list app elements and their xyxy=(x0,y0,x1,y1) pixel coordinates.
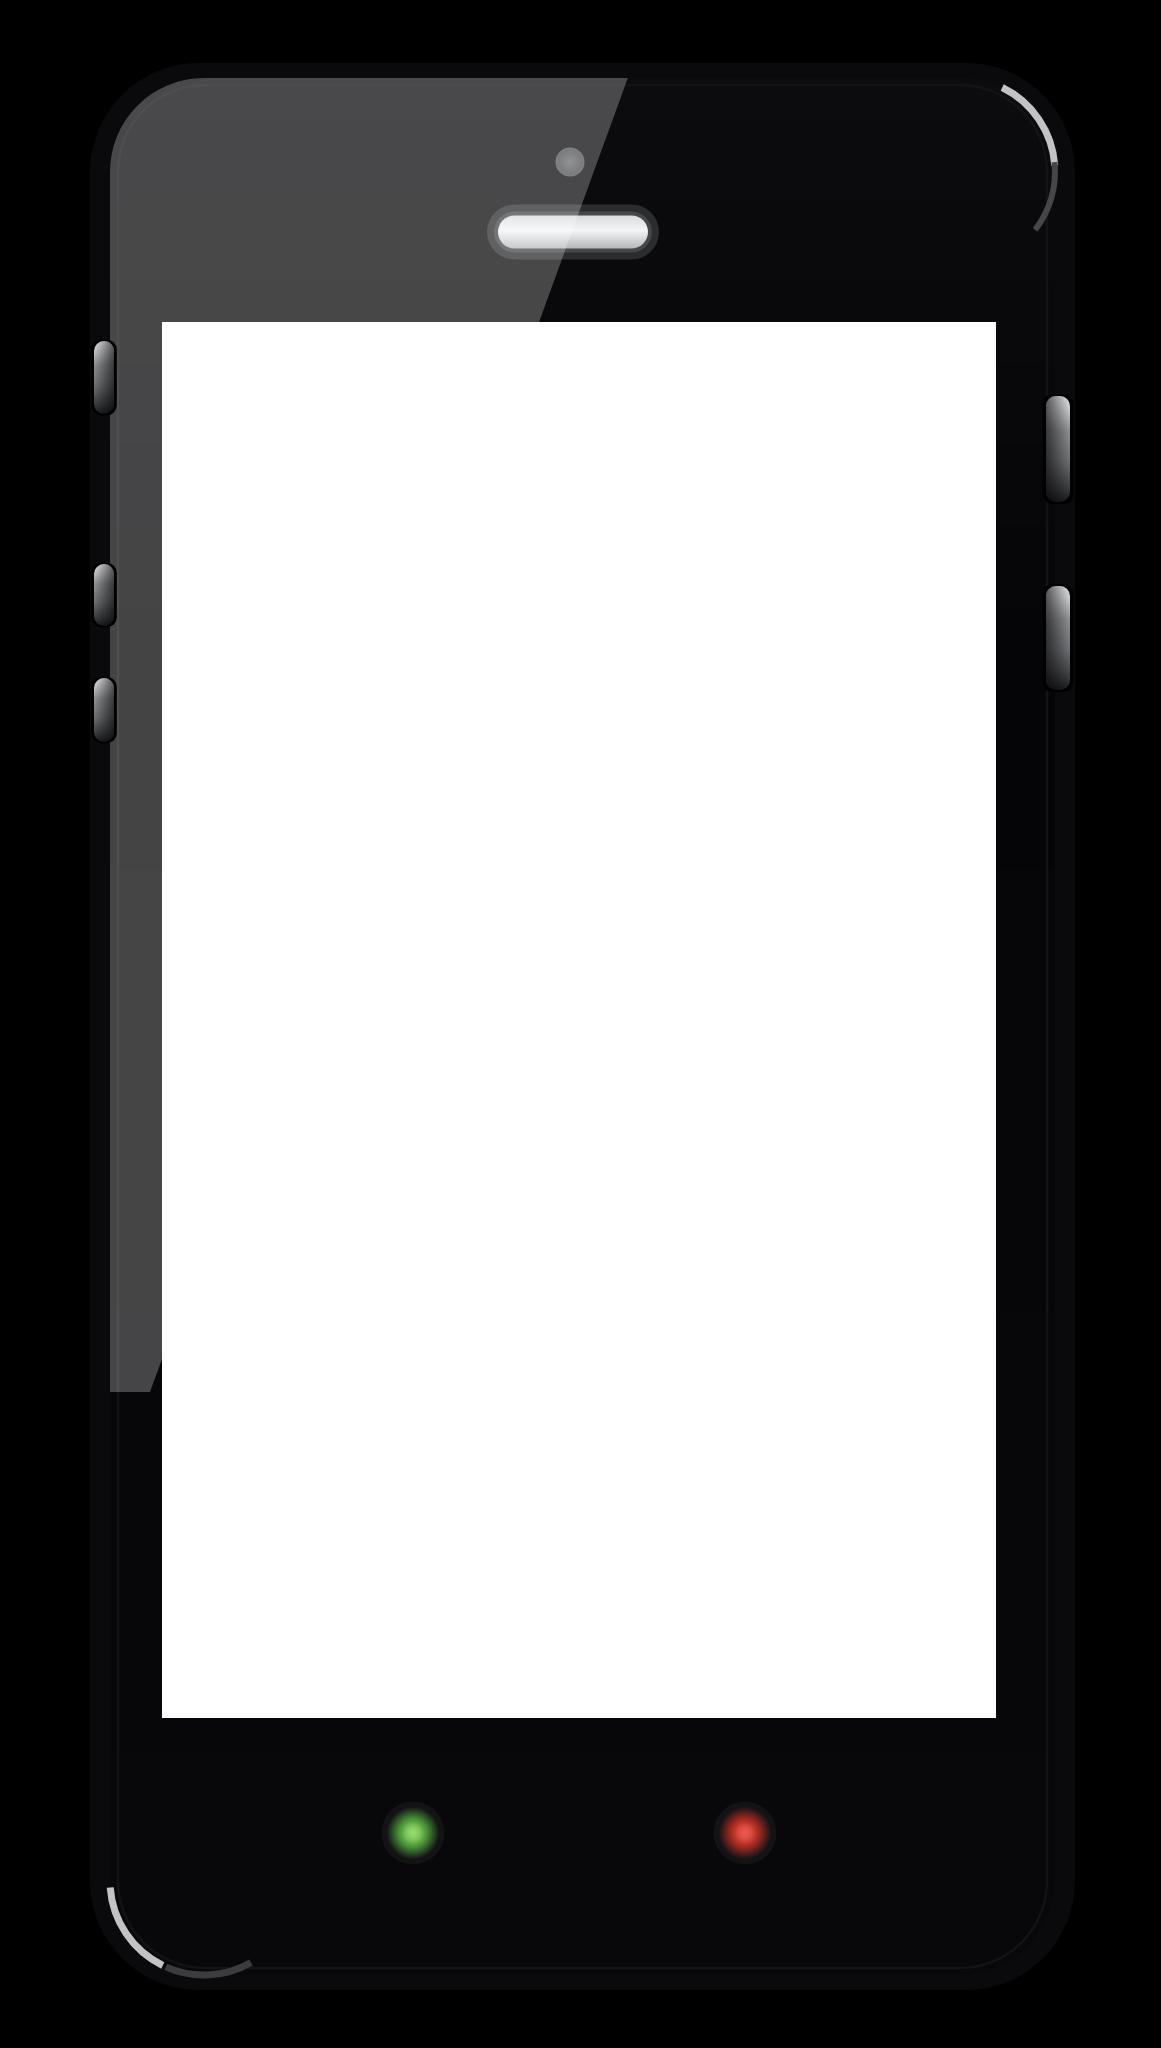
button[interactable]: Volume down xyxy=(94,564,114,626)
button[interactable]: Charging indicator xyxy=(392,1812,434,1854)
button[interactable]: Camera shutter xyxy=(1046,586,1070,690)
button[interactable]: Notification indicator xyxy=(724,1812,766,1854)
button[interactable]: Power xyxy=(1046,396,1070,502)
button[interactable]: Volume up xyxy=(94,341,114,414)
button[interactable]: Mute switch xyxy=(94,678,114,742)
